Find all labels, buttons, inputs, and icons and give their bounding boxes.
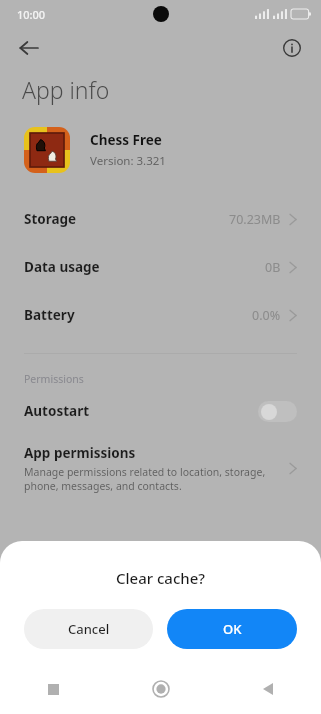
- staticText: 70.23MB: [229, 211, 281, 228]
- staticText: App info: [22, 74, 110, 105]
- staticText: Permissions: [24, 372, 84, 386]
- button[interactable]: Autostart toggle: [258, 401, 297, 422]
- staticText: OK: [223, 620, 242, 638]
- button[interactable]: Home: [107, 667, 214, 711]
- staticText: 10:00: [17, 7, 46, 22]
- staticText: 0.0%: [252, 307, 281, 324]
- button[interactable]: Autostart: [0, 386, 321, 436]
- button[interactable]: Back: [214, 667, 321, 711]
- button[interactable]: OK: [167, 609, 297, 649]
- button[interactable]: Recent apps: [0, 667, 107, 711]
- staticText: Clear cache?: [0, 568, 321, 588]
- staticText: 0B: [265, 259, 281, 276]
- button[interactable]: Cancel: [24, 609, 153, 649]
- button[interactable]: Battery: [0, 291, 321, 339]
- staticText: Autostart: [24, 402, 90, 420]
- button[interactable]: Data usage: [0, 243, 321, 291]
- staticText: Chess Free: [90, 131, 162, 149]
- staticText: App permissions: [24, 444, 136, 462]
- button[interactable]: App permissions: [0, 436, 321, 501]
- staticText: Battery: [24, 306, 75, 324]
- button[interactable]: Storage: [0, 195, 321, 243]
- staticText: Version: 3.321: [90, 153, 166, 169]
- staticText: Cancel: [68, 620, 110, 638]
- staticText: Storage: [24, 210, 77, 228]
- staticText: Data usage: [24, 258, 100, 276]
- staticText: Manage permissions related to location, …: [24, 465, 281, 493]
- button[interactable]: About: [273, 29, 311, 67]
- button[interactable]: Back: [10, 29, 48, 67]
